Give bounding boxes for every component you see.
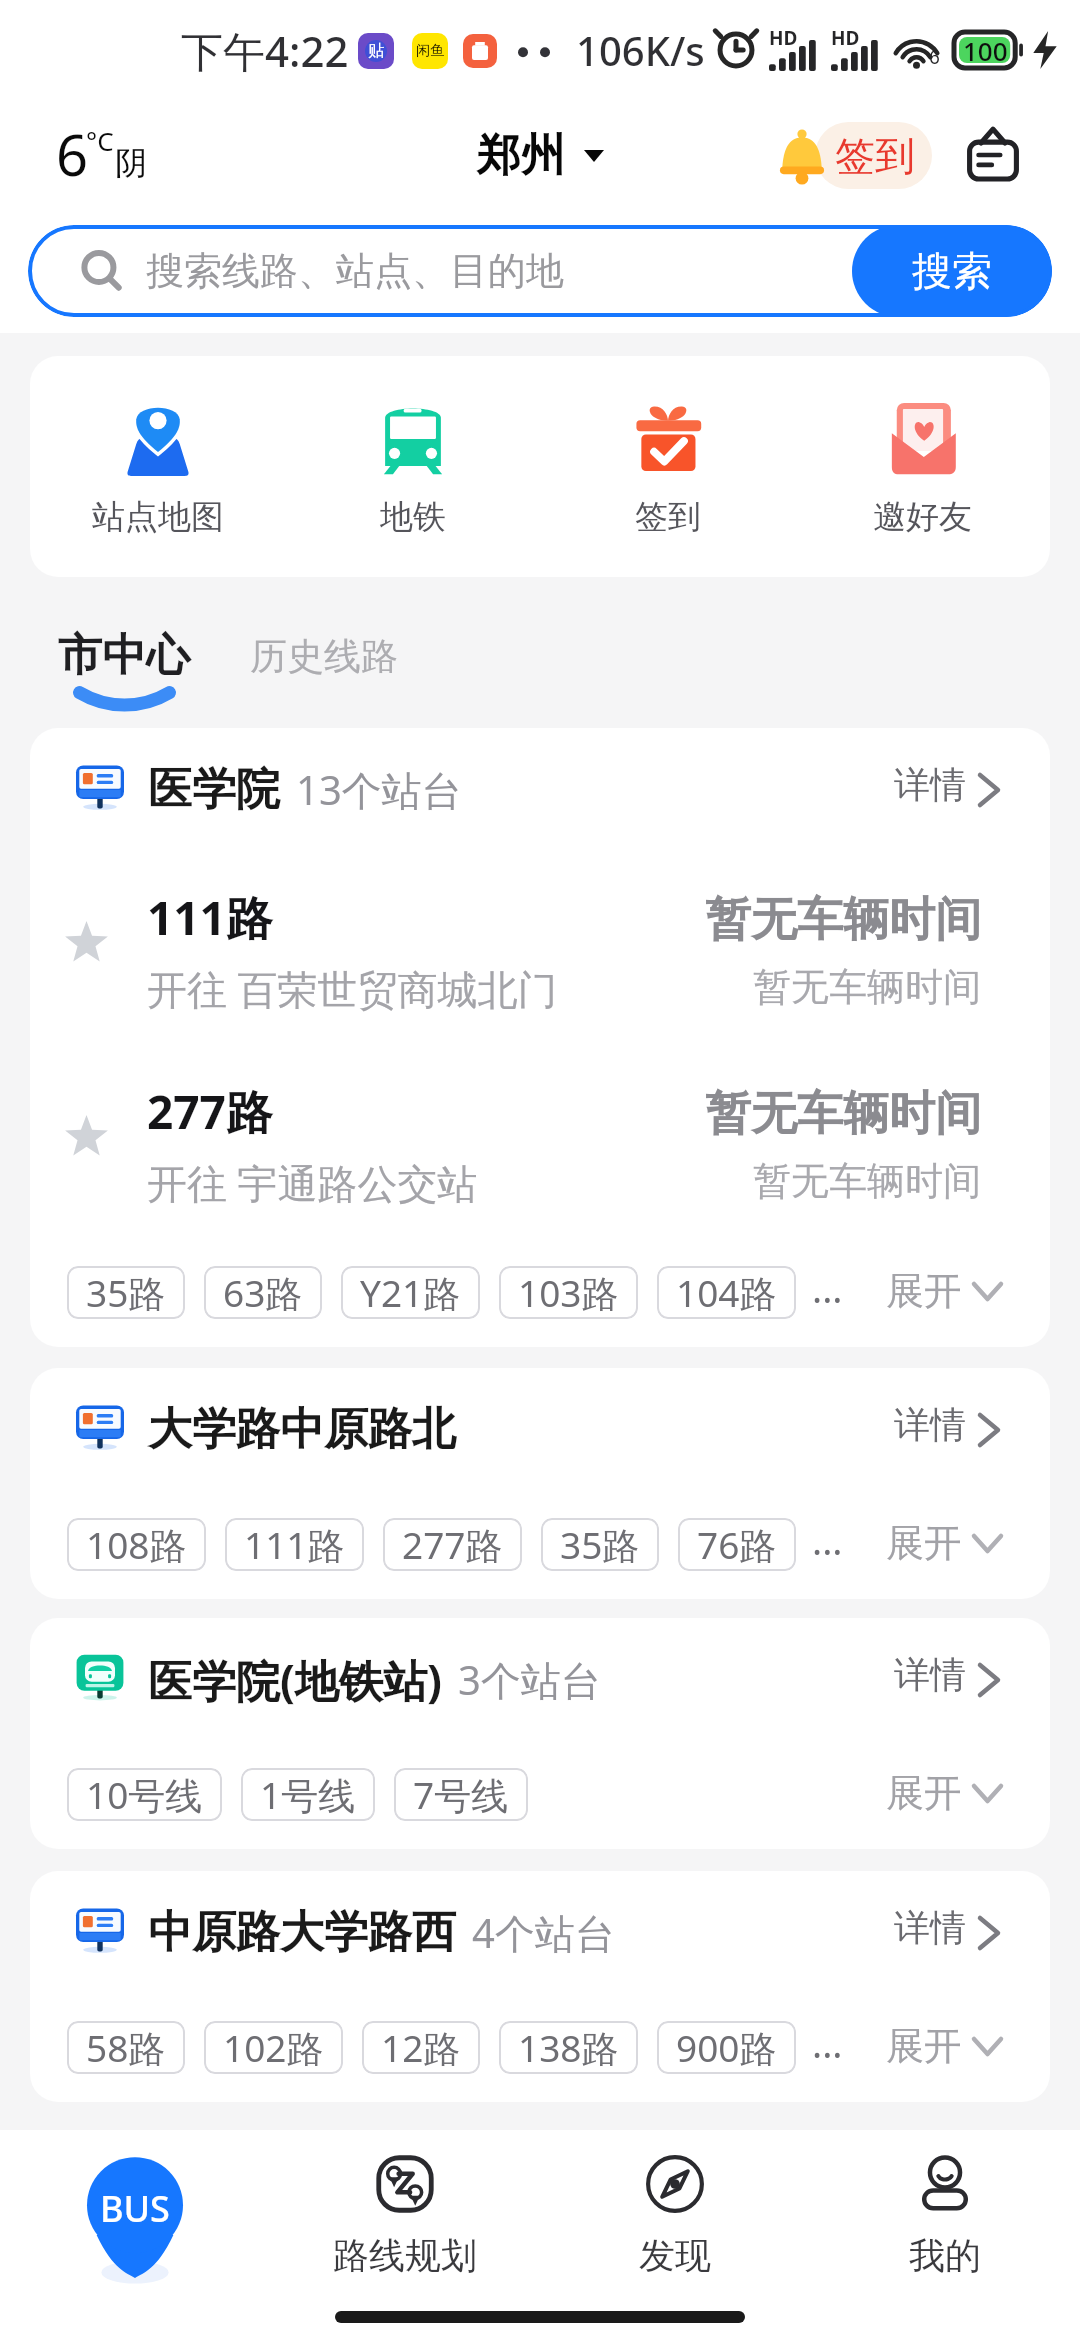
staticText: 103路 — [518, 1267, 619, 1318]
staticText: BUS — [100, 2184, 170, 2233]
button[interactable]: 展开 — [886, 1766, 1001, 1814]
staticText: 1号线 — [260, 1769, 356, 1820]
staticText: 900路 — [676, 2022, 777, 2073]
button[interactable]: 地铁 — [285, 356, 540, 577]
button[interactable]: 郑州 — [477, 128, 604, 183]
staticText: 搜索 — [912, 246, 992, 296]
staticText: 108路 — [86, 1519, 187, 1570]
button[interactable]: 搜索线路、站点、目的地 — [28, 225, 1052, 317]
button[interactable]: 市中心 — [58, 613, 190, 707]
button[interactable]: 邀好友 — [795, 356, 1050, 577]
button[interactable]: 138路 — [499, 2021, 638, 2074]
button[interactable]: 搜索 — [852, 225, 1052, 317]
button[interactable]: 展开 — [886, 1516, 1001, 1564]
staticText: HD — [831, 25, 860, 51]
staticText: ... — [812, 1514, 843, 1566]
staticText: 地铁 — [380, 496, 446, 538]
staticText: 暂无车辆时间 — [753, 963, 981, 1011]
button[interactable]: 104路 — [657, 1266, 796, 1319]
staticText: 58路 — [86, 2022, 166, 2073]
button[interactable]: 111路 — [225, 1518, 364, 1571]
staticText: 138路 — [518, 2022, 619, 2073]
button[interactable]: 277路 — [383, 1518, 522, 1571]
button[interactable]: Y21路 — [341, 1266, 480, 1319]
staticText: 中原路大学路西 — [148, 1905, 456, 1960]
staticText: 35路 — [560, 1519, 640, 1570]
button[interactable]: 展开 — [886, 2019, 1001, 2067]
button[interactable]: 63路 — [204, 1266, 322, 1319]
staticText: HD — [769, 25, 798, 51]
button[interactable]: 35路 — [541, 1518, 659, 1571]
button[interactable]: 大学路中原路北 — [30, 1368, 1050, 1481]
staticText: 展开 — [886, 1267, 962, 1315]
button[interactable]: 10号线 — [67, 1768, 222, 1821]
staticText: 12路 — [381, 2022, 461, 2073]
staticText: ... — [812, 1262, 843, 1314]
staticText: 6 — [929, 44, 940, 70]
staticText: 详情 — [894, 1402, 966, 1447]
button[interactable]: 历史线路 — [250, 613, 398, 680]
staticText: 发现 — [639, 2233, 711, 2278]
staticText: 贴 — [368, 41, 384, 61]
button[interactable]: 发现 — [540, 2130, 810, 2294]
staticText: 暂无车辆时间 — [705, 1085, 981, 1143]
button[interactable]: 展开 — [886, 1264, 1001, 1312]
staticText: 历史线路 — [250, 633, 398, 680]
staticText: 签到 — [635, 496, 701, 538]
button[interactable]: 900路 — [657, 2021, 796, 2074]
staticText: 13个站台 — [296, 762, 462, 817]
staticText: 6 — [56, 116, 89, 186]
button[interactable]: 76路 — [678, 1518, 796, 1571]
staticText: 详情 — [894, 1905, 966, 1950]
staticText: 暂无车辆时间 — [705, 891, 981, 949]
button[interactable]: 12路 — [362, 2021, 480, 2074]
staticText: 详情 — [894, 1652, 966, 1697]
button[interactable]: 站点地图 — [30, 356, 285, 577]
staticText: 111路 — [147, 886, 272, 949]
button[interactable]: 35路 — [67, 1266, 185, 1319]
button[interactable]: 6 — [50, 120, 155, 190]
staticText: 111路 — [244, 1519, 345, 1570]
staticText: °C — [86, 123, 114, 158]
button[interactable]: 103路 — [499, 1266, 638, 1319]
staticText: 详情 — [894, 762, 966, 807]
staticText: 102路 — [223, 2022, 324, 2073]
button[interactable]: 医学院 — [30, 728, 1050, 841]
staticText: 3个站台 — [458, 1652, 601, 1707]
staticText: 277路 — [147, 1080, 272, 1143]
button[interactable]: 公交 — [0, 2130, 270, 2294]
staticText: 展开 — [886, 1519, 962, 1567]
button[interactable]: 102路 — [204, 2021, 343, 2074]
button[interactable]: 签到 — [540, 356, 795, 577]
staticText: 医学院 — [148, 762, 280, 817]
staticText: 路线规划 — [333, 2233, 477, 2278]
staticText: 展开 — [886, 2022, 962, 2070]
staticText: 搜索线路、站点、目的地 — [146, 247, 564, 295]
staticText: 站点地图 — [92, 496, 224, 538]
staticText: 阴 — [115, 143, 147, 183]
button[interactable]: 医学院(地铁站) — [30, 1618, 1050, 1731]
button[interactable]: 签到 — [815, 122, 932, 189]
staticText: 63路 — [223, 1267, 303, 1318]
staticText: 7号线 — [413, 1769, 509, 1820]
button[interactable]: 277路 — [30, 1035, 1050, 1229]
button[interactable]: 1号线 — [241, 1768, 375, 1821]
staticText: 邀好友 — [873, 496, 972, 538]
button[interactable]: 7号线 — [394, 1768, 528, 1821]
staticText: 10号线 — [86, 1769, 203, 1820]
staticText: 76路 — [697, 1519, 777, 1570]
button[interactable]: 111路 — [30, 841, 1050, 1035]
button[interactable]: 我的 — [810, 2130, 1080, 2294]
staticText: 大学路中原路北 — [148, 1402, 456, 1457]
staticText: 106K/s — [576, 23, 705, 77]
staticText: 我的 — [909, 2233, 981, 2278]
staticText: 市中心 — [58, 628, 190, 683]
staticText: 暂无车辆时间 — [753, 1157, 981, 1205]
staticText: 展开 — [886, 1769, 962, 1817]
staticText: 104路 — [676, 1267, 777, 1318]
button[interactable]: 58路 — [67, 2021, 185, 2074]
button[interactable]: 中原路大学路西 — [30, 1871, 1050, 1984]
button[interactable]: 108路 — [67, 1518, 206, 1571]
button[interactable]: 路线规划 — [270, 2130, 540, 2294]
button[interactable]: 消息 — [963, 125, 1023, 185]
